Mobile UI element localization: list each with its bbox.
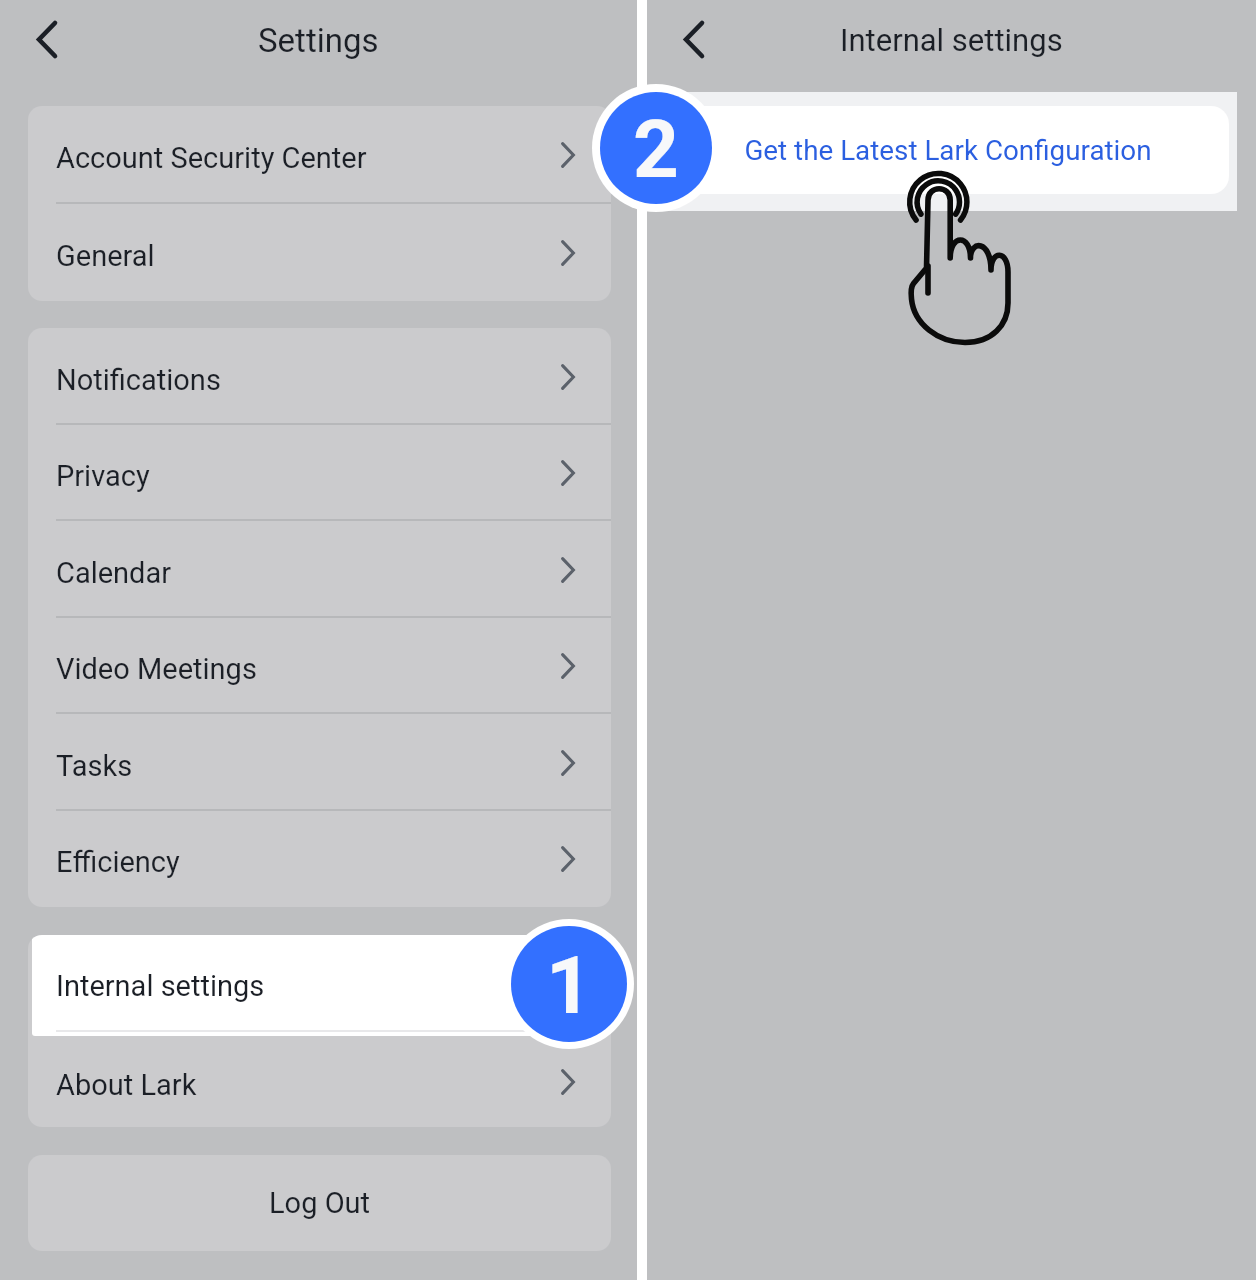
staticText: Get the Latest Lark Configuration bbox=[744, 134, 1152, 167]
staticText: Privacy bbox=[56, 459, 150, 493]
staticText: Log Out bbox=[269, 1186, 371, 1220]
staticText: 1 bbox=[546, 939, 592, 1033]
staticText: Calendar bbox=[56, 556, 172, 590]
staticText: Internal settings bbox=[56, 969, 265, 1003]
button[interactable]: Log Out bbox=[28, 1155, 611, 1251]
button[interactable]: Video Meetings bbox=[28, 618, 611, 714]
button[interactable]: Calendar bbox=[28, 521, 611, 618]
button[interactable]: Tasks bbox=[28, 714, 611, 811]
staticText: Notifications bbox=[56, 363, 221, 397]
staticText: Account Security Center bbox=[56, 141, 367, 175]
button[interactable]: Internal settings bbox=[32, 935, 608, 1036]
staticText: Internal settings bbox=[840, 22, 1063, 58]
button[interactable]: Efficiency bbox=[28, 811, 611, 907]
button[interactable]: Back bbox=[24, 16, 70, 62]
button[interactable]: Get the Latest Lark Configuration bbox=[656, 106, 1229, 194]
staticText: Tasks bbox=[56, 749, 133, 783]
button[interactable]: Back bbox=[671, 16, 717, 62]
button[interactable]: General bbox=[28, 204, 611, 301]
button[interactable]: Notifications bbox=[28, 328, 611, 425]
staticText: Settings bbox=[258, 21, 379, 60]
button[interactable]: Account Security Center bbox=[28, 106, 611, 204]
button[interactable]: Privacy bbox=[28, 425, 611, 521]
staticText: 2 bbox=[633, 103, 679, 197]
staticText: Efficiency bbox=[56, 845, 180, 879]
button[interactable]: About Lark bbox=[28, 1036, 611, 1127]
staticText: General bbox=[56, 239, 155, 273]
staticText: About Lark bbox=[56, 1068, 197, 1102]
staticText: Video Meetings bbox=[56, 652, 257, 686]
